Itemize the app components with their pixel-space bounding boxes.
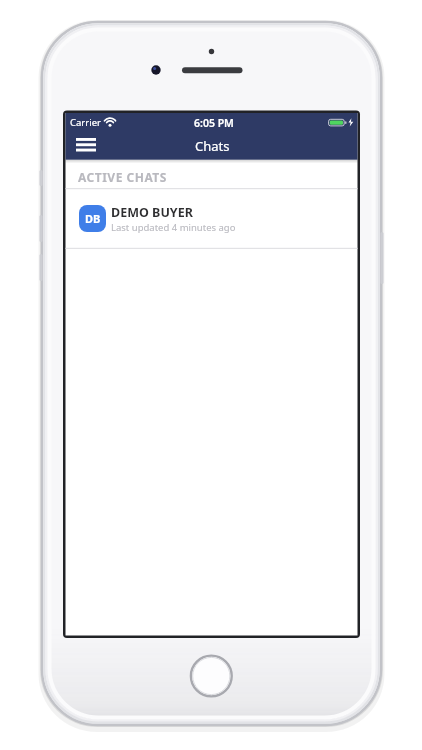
staticText: Last updated 4 minutes ago: [111, 221, 236, 234]
staticText: DEMO BUYER: [111, 204, 193, 220]
staticText: ACTIVE CHATS: [78, 169, 167, 185]
staticText: Carrier: [70, 116, 101, 129]
staticText: Chats: [195, 137, 230, 155]
button[interactable]: [69, 132, 103, 158]
staticText: 6:05 PM: [194, 116, 234, 130]
button[interactable]: DB: [66, 189, 358, 248]
staticText: DB: [85, 211, 101, 226]
